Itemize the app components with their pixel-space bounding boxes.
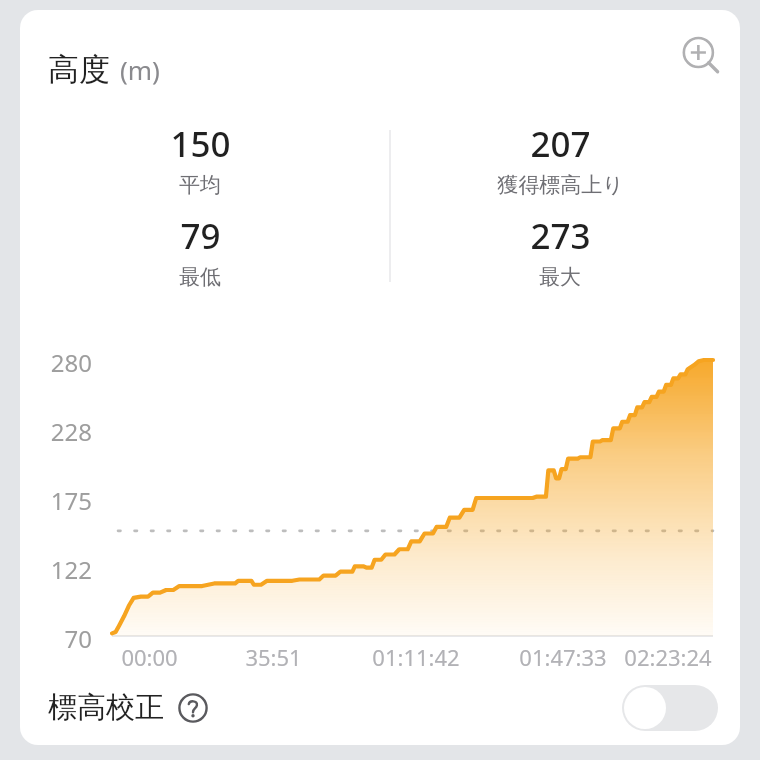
- staticText: 150: [170, 120, 231, 168]
- staticText: 最大: [539, 264, 581, 290]
- staticText: 228: [50, 415, 92, 448]
- staticText: 01:47:33: [519, 642, 607, 672]
- staticText: 01:11:42: [372, 642, 460, 672]
- staticText: 70: [64, 622, 92, 655]
- staticText: 最低: [179, 264, 221, 290]
- staticText: 獲得標高上り: [497, 172, 624, 198]
- staticText: 273: [530, 212, 591, 260]
- staticText: 02:23:24: [624, 642, 712, 672]
- staticText: 標高校正: [48, 689, 164, 726]
- staticText: 122: [50, 553, 92, 586]
- staticText: 35:51: [245, 642, 302, 672]
- other: Help: [176, 691, 210, 725]
- staticText: 平均: [179, 172, 221, 198]
- staticText: 高度: [48, 50, 110, 89]
- staticText: (m): [120, 52, 160, 87]
- staticText: 175: [50, 484, 92, 517]
- button[interactable]: 標高校正: [48, 689, 210, 726]
- staticText: 00:00: [121, 642, 178, 672]
- staticText: 207: [530, 120, 591, 168]
- staticText: 280: [50, 346, 92, 379]
- button[interactable]: Elevation correction toggle: [622, 685, 718, 731]
- button[interactable]: Zoom in: [673, 28, 729, 84]
- staticText: 79: [180, 212, 221, 260]
